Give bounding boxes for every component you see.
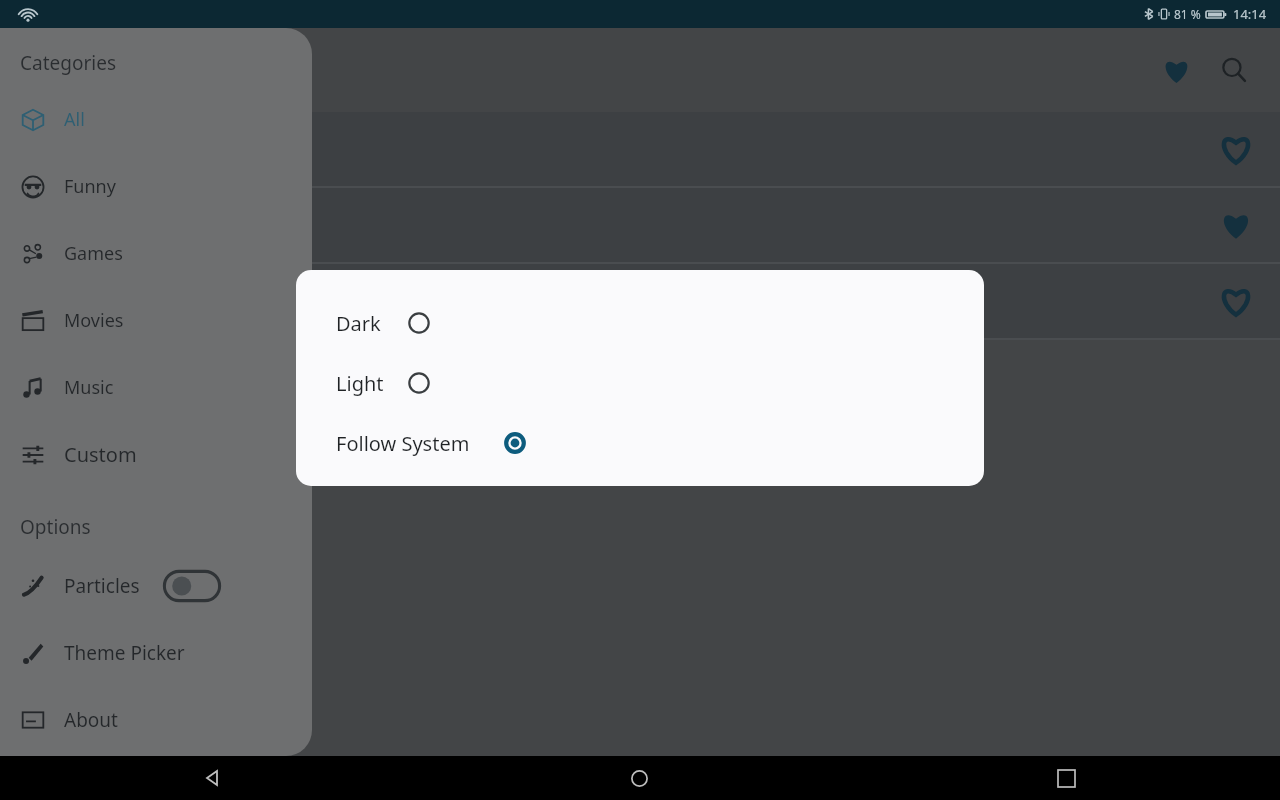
button[interactable]: Particles	[0, 552, 312, 619]
staticText: Categories	[20, 50, 116, 76]
button[interactable]: Movies	[0, 287, 312, 354]
staticText: 81 %	[1174, 6, 1201, 22]
button[interactable]: Favorite	[1212, 277, 1260, 325]
staticText: 14:14	[1233, 5, 1267, 23]
button[interactable]: Custom	[0, 421, 312, 488]
button[interactable]: Funny	[0, 153, 312, 220]
button[interactable]: About	[0, 686, 312, 753]
button[interactable]: Dark	[296, 293, 436, 353]
button[interactable]: Theme Picker	[0, 619, 312, 686]
staticText: All	[64, 107, 85, 132]
button[interactable]: Favorite	[0, 264, 1280, 338]
button[interactable]: Favorites	[1150, 44, 1202, 96]
staticText: Theme Picker	[64, 640, 185, 666]
button[interactable]: Back	[0, 756, 426, 800]
staticText: Custom	[64, 441, 137, 468]
staticText: Options	[20, 514, 91, 540]
staticText: Funny	[64, 174, 116, 199]
button[interactable]: Recent apps	[853, 756, 1280, 800]
button[interactable]: Favorite	[1212, 201, 1260, 249]
button[interactable]: Particles toggle	[162, 569, 222, 603]
staticText: About	[64, 707, 118, 733]
button[interactable]: Favorite	[0, 112, 1280, 186]
button[interactable]: Follow System	[296, 413, 532, 473]
button[interactable]: All	[0, 86, 312, 153]
staticText: Games	[64, 241, 123, 266]
staticText: Dark	[336, 310, 381, 337]
button[interactable]: Favorite	[0, 188, 1280, 262]
button[interactable]: Home	[426, 756, 853, 800]
staticText: Movies	[64, 308, 124, 333]
button[interactable]: Favorite	[1212, 125, 1260, 173]
staticText: Follow System	[336, 430, 470, 457]
button[interactable]: Music	[0, 354, 312, 421]
button[interactable]: Search	[1208, 44, 1260, 96]
button[interactable]: Games	[0, 220, 312, 287]
button[interactable]: Light	[296, 353, 436, 413]
staticText: Music	[64, 375, 114, 400]
staticText: Light	[336, 370, 384, 397]
staticText: Particles	[64, 573, 140, 599]
